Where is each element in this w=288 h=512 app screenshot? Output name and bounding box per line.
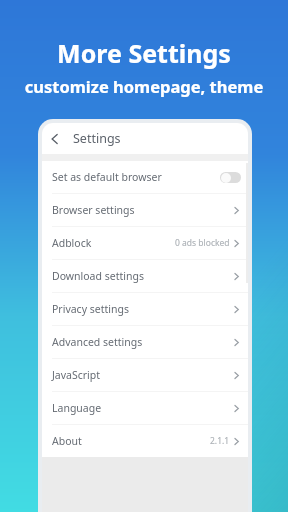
- button[interactable]: Back: [42, 126, 68, 152]
- staticText: About: [52, 434, 82, 448]
- staticText: Adblock: [52, 236, 92, 250]
- staticText: 2.1.1: [210, 435, 230, 447]
- staticText: Settings: [73, 130, 121, 147]
- button[interactable]: About: [42, 425, 248, 457]
- button[interactable]: Language: [42, 392, 248, 424]
- staticText: 0 ads blocked: [175, 237, 230, 249]
- button[interactable]: Advanced settings: [42, 326, 248, 358]
- button[interactable]: Adblock: [42, 227, 248, 259]
- staticText: Advanced settings: [52, 335, 143, 349]
- staticText: Language: [52, 401, 102, 415]
- button[interactable]: Download settings: [42, 260, 248, 292]
- staticText: customize homepage, theme: [0, 75, 288, 97]
- staticText: Browser settings: [52, 203, 135, 217]
- staticText: More Settings: [0, 36, 288, 70]
- button[interactable]: Set as default browser toggle: [220, 172, 241, 183]
- button[interactable]: Browser settings: [42, 194, 248, 226]
- button[interactable]: Set as default browser: [42, 161, 248, 193]
- staticText: Download settings: [52, 269, 144, 283]
- staticText: JavaScript: [52, 368, 101, 382]
- staticText: Set as default browser: [52, 170, 162, 184]
- staticText: Privacy settings: [52, 302, 129, 316]
- button[interactable]: JavaScript: [42, 359, 248, 391]
- button[interactable]: Privacy settings: [42, 293, 248, 325]
